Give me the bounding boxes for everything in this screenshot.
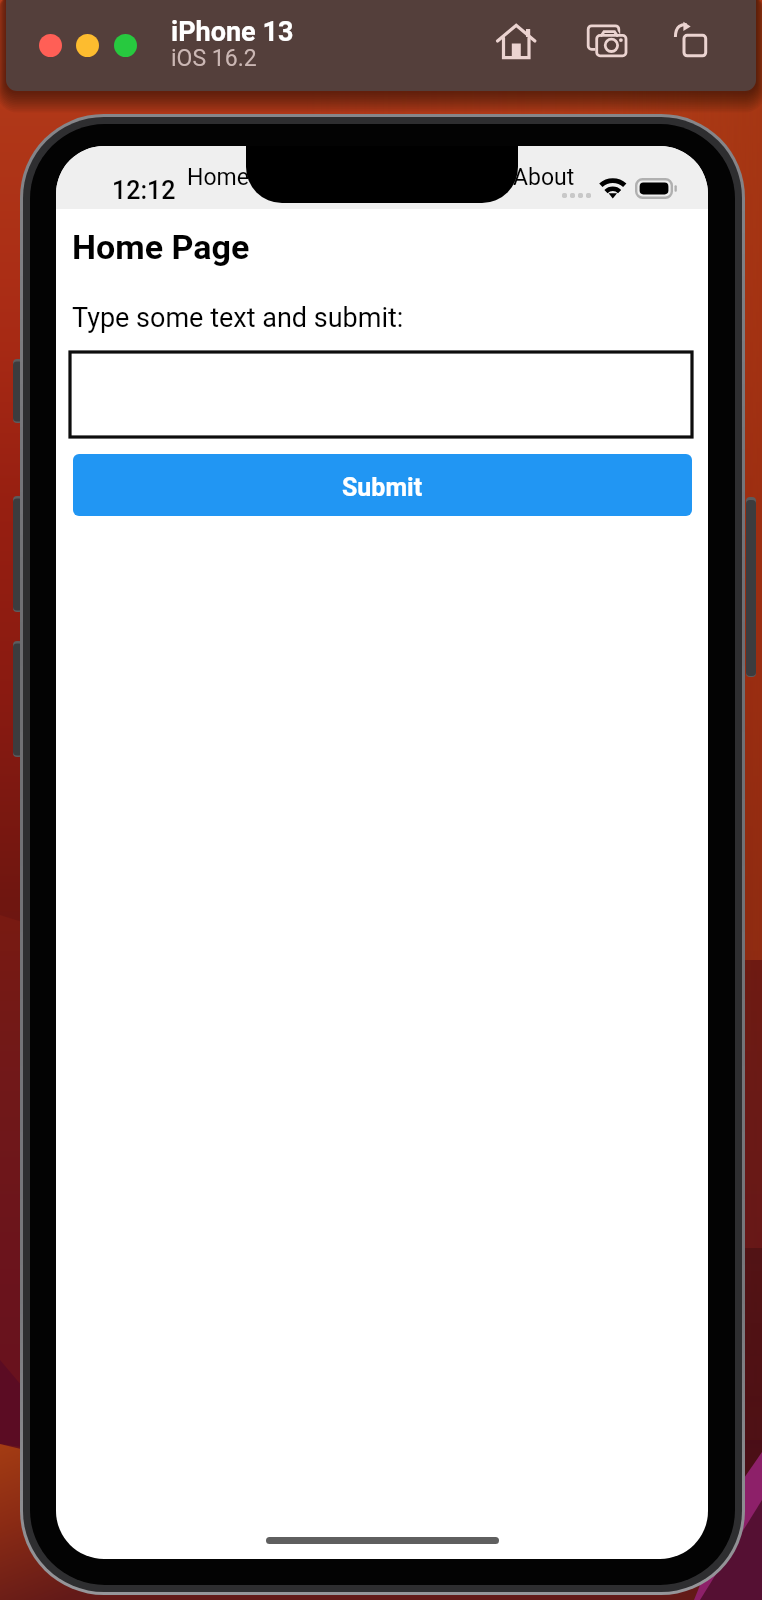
button[interactable]: Home bbox=[187, 164, 249, 191]
button[interactable]: Home bbox=[486, 10, 550, 74]
button[interactable] bbox=[76, 34, 99, 57]
button[interactable]: About bbox=[513, 164, 575, 191]
staticText: Type some text and submit: bbox=[72, 302, 404, 334]
button[interactable]: Submit bbox=[73, 454, 692, 516]
staticText: iPhone 13 bbox=[171, 16, 294, 48]
button[interactable]: Rotate bbox=[659, 9, 723, 73]
staticText: iOS 16.2 bbox=[171, 45, 257, 72]
button[interactable] bbox=[114, 34, 137, 57]
button[interactable] bbox=[39, 34, 62, 57]
staticText: Home Page bbox=[72, 227, 250, 267]
button[interactable]: Screenshot bbox=[576, 11, 640, 75]
staticText: Submit bbox=[342, 473, 423, 502]
staticText: 12:12 bbox=[112, 176, 176, 205]
